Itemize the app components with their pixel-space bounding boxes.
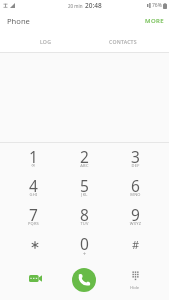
staticText: DEF	[110, 163, 161, 168]
staticText: ∞	[8, 162, 59, 168]
staticText: 4	[8, 175, 59, 196]
button[interactable]: 8	[59, 201, 110, 230]
button[interactable]	[8, 230, 59, 259]
staticText: #	[110, 237, 161, 252]
staticText: MORE	[145, 17, 165, 25]
staticText: 76%	[152, 2, 162, 9]
staticText: 0	[59, 233, 110, 254]
staticText: 5	[59, 175, 110, 196]
staticText: 7	[8, 204, 59, 225]
staticText: TUV	[59, 221, 110, 226]
button[interactable]: Call	[72, 268, 96, 292]
staticText: 20 min	[68, 3, 83, 9]
button[interactable]: LOG	[8, 30, 84, 52]
button[interactable]: 5	[59, 172, 110, 201]
button[interactable]: 7	[8, 201, 59, 230]
staticText: 8	[59, 204, 110, 225]
staticText: 9	[110, 204, 161, 225]
staticText: 3	[110, 146, 161, 167]
button[interactable]: 6	[110, 172, 161, 201]
button[interactable]: 0	[59, 230, 110, 259]
button[interactable]: 9	[110, 201, 161, 230]
staticText: WXYZ	[110, 221, 161, 226]
staticText: CONTACTS	[109, 38, 137, 45]
button[interactable]: CONTACTS	[84, 30, 161, 52]
staticText: 20:48	[85, 1, 102, 10]
button[interactable]: 1	[8, 143, 59, 172]
button[interactable]: 2	[59, 143, 110, 172]
staticText: MNO	[110, 192, 161, 197]
staticText: PQRS	[8, 221, 59, 226]
staticText: Phone	[7, 16, 30, 26]
staticText: 1	[8, 146, 59, 167]
button[interactable]: #	[110, 230, 161, 259]
staticText: ABC	[59, 163, 110, 168]
staticText: 6	[110, 175, 161, 196]
staticText: 2	[59, 146, 110, 167]
staticText: GHI	[8, 192, 59, 197]
button[interactable]: Video call	[17, 266, 53, 291]
button[interactable]: 3	[110, 143, 161, 172]
staticText: JKL	[59, 192, 110, 197]
button[interactable]: Hide keypad	[117, 266, 153, 292]
staticText: +	[59, 250, 110, 258]
button[interactable]: 4	[8, 172, 59, 201]
button[interactable]: MORE	[140, 14, 169, 28]
staticText: Hide	[130, 285, 140, 291]
staticText: LOG	[40, 38, 52, 45]
